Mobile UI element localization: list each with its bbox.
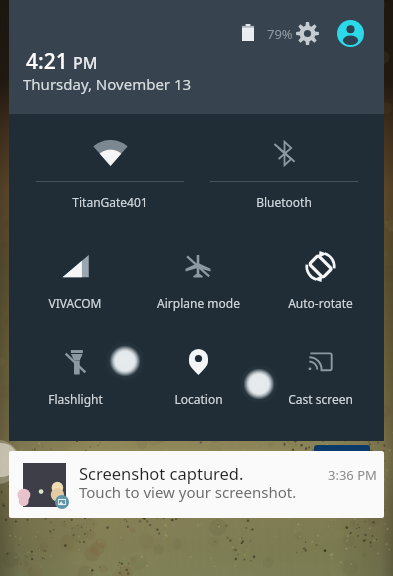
button[interactable]: Flashlight (14, 345, 136, 420)
staticText: Screenshot captured. (79, 462, 244, 484)
staticText: VIVACOM (48, 295, 102, 311)
staticText: Cast screen (288, 391, 353, 407)
staticText: TitanGate401 (72, 194, 148, 210)
staticText: Airplane mode (157, 295, 240, 311)
staticText: Flashlight (48, 391, 103, 407)
button[interactable]: Location (137, 345, 259, 420)
button[interactable]: Airplane mode (137, 249, 259, 324)
button[interactable]: Cast screen (259, 345, 381, 420)
button[interactable]: Screenshot captured. (9, 451, 384, 518)
staticText: 3:36 PM (328, 466, 377, 484)
staticText: 4:21 (26, 47, 68, 76)
button[interactable]: VIVACOM (14, 249, 136, 324)
button[interactable]: Auto-rotate (259, 249, 381, 324)
staticText: Auto-rotate (288, 295, 353, 311)
button[interactable]: User account (336, 19, 364, 47)
staticText: Bluetooth (256, 194, 312, 210)
staticText: Touch to view your screenshot. (79, 482, 297, 502)
staticText: Location (174, 391, 223, 407)
staticText: PM (73, 52, 98, 74)
button[interactable]: Settings (295, 21, 319, 45)
button[interactable]: TitanGate401 (36, 118, 184, 214)
staticText: Thursday, November 13 (23, 74, 192, 94)
button[interactable]: Bluetooth (210, 118, 358, 214)
staticText: 79% (267, 25, 293, 43)
